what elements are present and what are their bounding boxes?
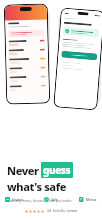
button[interactable]: [10, 84, 46, 91]
button[interactable]: 4.8 from 2k+ reviews: [25, 209, 78, 213]
button[interactable]: [61, 51, 97, 60]
staticText: Instant: [12, 198, 23, 202]
button[interactable]: [9, 48, 45, 55]
button[interactable]: [5, 4, 49, 104]
other: Instant: [5, 197, 10, 202]
button[interactable]: [10, 75, 46, 82]
other: Safe: [44, 197, 49, 202]
staticText: Scan any menu, thread before you order.: [7, 198, 72, 203]
staticText: Menus: [86, 198, 97, 202]
button[interactable]: [9, 39, 45, 46]
staticText: 4.8 from 2k+ reviews: [47, 209, 78, 213]
staticText: guess: [43, 163, 71, 177]
button[interactable]: Menus: [79, 197, 97, 202]
button[interactable]: [65, 29, 97, 35]
staticText: Safe: [51, 198, 58, 202]
button[interactable]: [54, 8, 102, 109]
staticText: what's safe again: [7, 179, 95, 194]
button[interactable]: Safe: [44, 197, 58, 202]
button[interactable]: Instant: [5, 197, 23, 202]
other: Menus: [79, 197, 84, 202]
button[interactable]: [9, 57, 45, 64]
button[interactable]: [9, 66, 45, 73]
staticText: Never: [7, 163, 39, 178]
